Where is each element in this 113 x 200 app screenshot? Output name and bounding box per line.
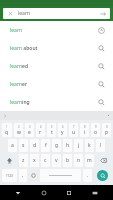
button[interactable]: Search (95, 60, 107, 72)
button[interactable]: 8 (80, 123, 89, 137)
button[interactable]: s (19, 139, 28, 152)
button[interactable]: Back (11, 186, 25, 200)
button[interactable]: k (85, 139, 94, 152)
button[interactable]: d (30, 139, 39, 152)
staticText: z (22, 157, 25, 164)
button[interactable]: g (52, 139, 61, 152)
button[interactable]: l (96, 139, 105, 152)
staticText: c (44, 157, 47, 164)
button[interactable]: Shift (2, 154, 17, 167)
staticText: u (72, 129, 76, 136)
button[interactable]: ?123 (2, 169, 17, 182)
button[interactable]: 4 (36, 123, 45, 137)
button[interactable]: b (63, 154, 72, 167)
staticText: learning (10, 99, 30, 106)
button[interactable]: 5 (47, 123, 56, 137)
staticText: , (22, 172, 24, 179)
button[interactable]: 2 (14, 123, 23, 137)
button[interactable]: x (30, 154, 39, 167)
staticText: o (94, 129, 98, 136)
button[interactable]: learning (0, 93, 113, 111)
button[interactable]: v (52, 154, 61, 167)
staticText: l (100, 142, 102, 149)
staticText: b (66, 157, 70, 164)
staticText: learn about (10, 45, 38, 52)
button[interactable]: Space (40, 169, 81, 182)
button[interactable]: learn (0, 21, 113, 39)
staticText: 2 (18, 125, 20, 129)
staticText: p (105, 129, 109, 136)
button[interactable]: 3 (25, 123, 34, 137)
button[interactable]: n (74, 154, 83, 167)
button[interactable]: Submit search (98, 9, 107, 18)
staticText: e (28, 129, 31, 136)
staticText: t (51, 129, 53, 136)
staticText: 7 (73, 125, 75, 129)
button[interactable]: j (74, 139, 83, 152)
staticText: i (84, 129, 86, 136)
button[interactable]: Search (95, 96, 107, 108)
staticText: q (5, 129, 9, 136)
staticText: d (33, 142, 37, 149)
button[interactable]: z (19, 154, 28, 167)
button[interactable]: learner (0, 75, 113, 93)
staticText: f (45, 142, 47, 149)
button[interactable]: Keyboard settings (104, 111, 113, 120)
staticText: w (17, 129, 21, 136)
button[interactable]: . (83, 169, 92, 182)
staticText: h (66, 142, 70, 149)
button[interactable]: Clear search (6, 9, 15, 18)
button[interactable]: Recent search (95, 24, 107, 36)
button[interactable]: 7 (69, 123, 78, 137)
button[interactable]: Search (95, 78, 107, 90)
staticText: learner (10, 81, 28, 88)
staticText: . (87, 172, 89, 179)
button[interactable]: c (41, 154, 50, 167)
button[interactable]: a (8, 139, 17, 152)
staticText: learn (18, 10, 31, 17)
staticText: learn (10, 27, 23, 34)
button[interactable]: 1 (2, 123, 12, 137)
staticText: 0 (106, 125, 108, 129)
staticText: learned (10, 63, 29, 70)
button[interactable]: Emoji (29, 169, 38, 182)
staticText: 5 (51, 125, 53, 129)
button[interactable]: Backspace (96, 154, 111, 167)
button[interactable]: Search (95, 42, 107, 54)
button[interactable]: Switch keyboard (88, 186, 102, 200)
button[interactable]: , (19, 169, 27, 182)
button[interactable]: Expand suggestions (0, 111, 9, 120)
button[interactable]: 6 (58, 123, 67, 137)
button[interactable]: m (85, 154, 94, 167)
button[interactable]: Search (97, 170, 108, 181)
button[interactable]: h (63, 139, 72, 152)
staticText: 8 (84, 125, 86, 129)
staticText: 3 (29, 125, 31, 129)
staticText: v (55, 157, 58, 164)
staticText: n (77, 157, 81, 164)
staticText: m (87, 157, 92, 164)
button[interactable]: Home (37, 186, 51, 200)
staticText: g (55, 142, 59, 149)
staticText: s (22, 142, 25, 149)
button[interactable]: 9 (91, 123, 100, 137)
staticText: ?123 (6, 174, 13, 178)
staticText: a (11, 142, 14, 149)
staticText: r (39, 129, 42, 136)
staticText: 4 (40, 125, 42, 129)
staticText: 1 (6, 125, 8, 129)
staticText: 9 (95, 125, 97, 129)
staticText: y (61, 129, 64, 136)
button[interactable]: learned (0, 57, 113, 75)
button[interactable]: learn about (0, 39, 113, 57)
button[interactable]: Recents (62, 186, 76, 200)
button[interactable]: 0 (102, 123, 111, 137)
button[interactable]: f (41, 139, 50, 152)
staticText: k (88, 142, 91, 149)
staticText: x (33, 157, 36, 164)
button[interactable]: Clear search (3, 8, 110, 19)
staticText: 6 (62, 125, 64, 129)
staticText: j (78, 142, 80, 149)
